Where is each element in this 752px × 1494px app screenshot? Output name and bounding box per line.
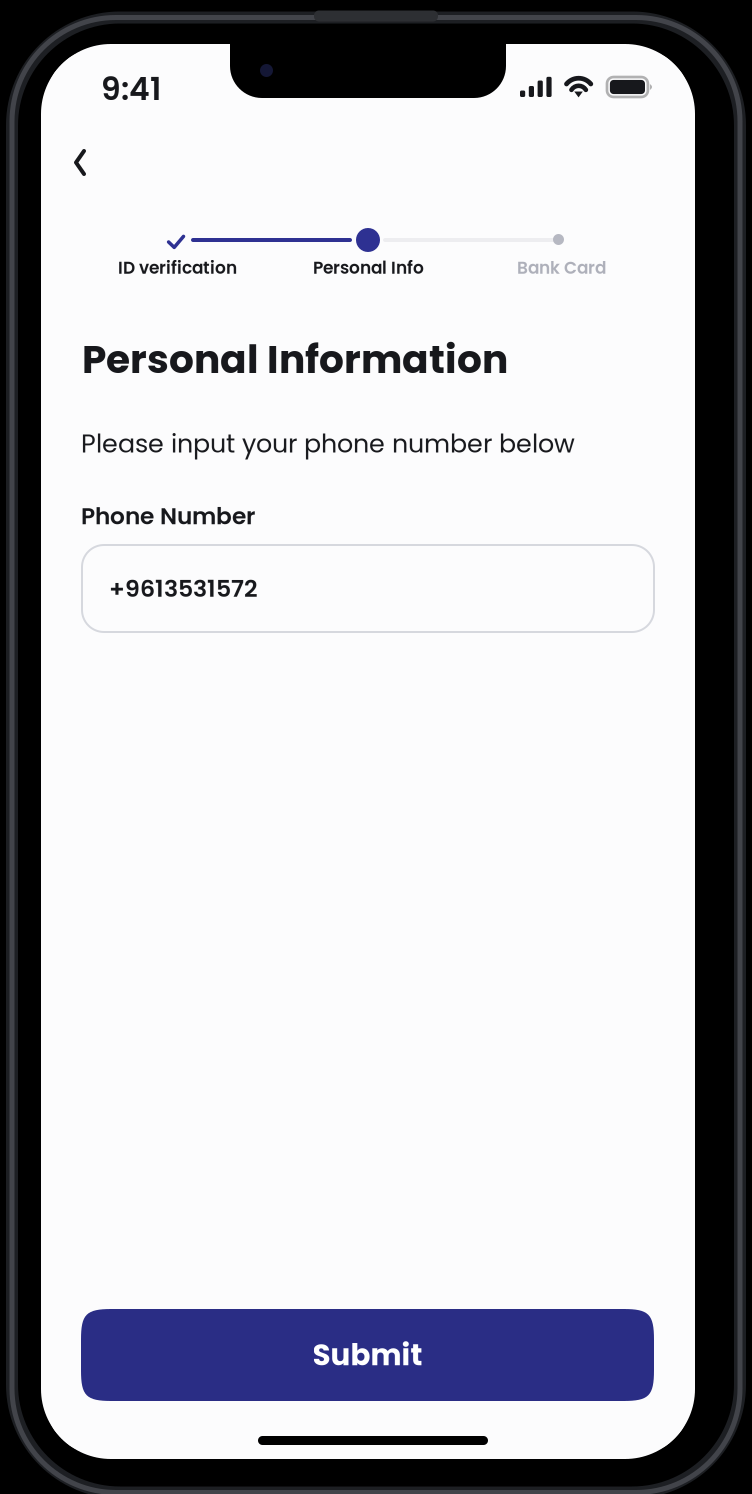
button[interactable]: Submit [81, 1309, 654, 1401]
staticText: Bank Card [517, 256, 606, 280]
button[interactable]: +9613531572 [82, 545, 654, 632]
button[interactable]: Back [58, 133, 102, 192]
staticText: Phone Number [81, 500, 255, 532]
staticText: ID verification [118, 256, 237, 280]
staticText: Please input your phone number below [81, 426, 575, 461]
staticText: Submit [312, 1334, 422, 1376]
staticText: 9:41 [101, 67, 161, 111]
staticText: Personal Information [82, 332, 508, 387]
staticText: Personal Info [313, 256, 424, 280]
staticText: +9613531572 [109, 572, 258, 605]
